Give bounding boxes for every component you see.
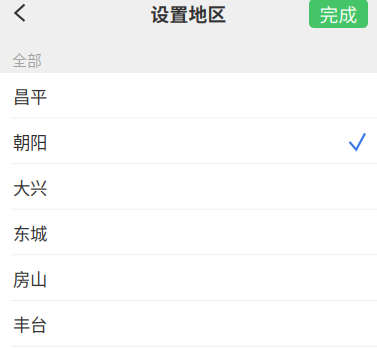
staticText: 朝阳 [13, 129, 47, 154]
button[interactable]: 昌平 [0, 73, 377, 119]
button[interactable]: 大兴 [0, 164, 377, 210]
staticText: 房山 [13, 266, 47, 291]
button[interactable]: 朝阳 [0, 119, 377, 164]
button[interactable]: 房山 [0, 255, 377, 301]
staticText: 设置地区 [150, 0, 226, 26]
staticText: 大兴 [13, 174, 47, 200]
button[interactable]: 丰台 [0, 301, 377, 347]
staticText: 昌平 [13, 83, 47, 108]
button[interactable]: 完成 [309, 0, 368, 28]
button[interactable]: 东城 [0, 210, 377, 255]
staticText: 全部 [12, 49, 42, 70]
staticText: 东城 [13, 220, 47, 245]
staticText: 完成 [319, 0, 357, 27]
button[interactable]: 返回 [0, 0, 46, 29]
staticText: 丰台 [13, 311, 47, 336]
